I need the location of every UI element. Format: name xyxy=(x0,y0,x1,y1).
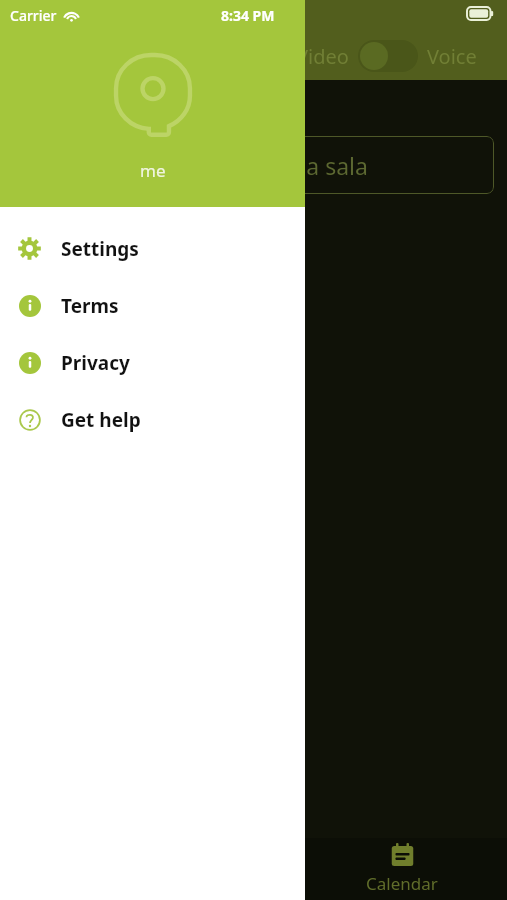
staticText: me xyxy=(140,159,166,182)
staticText: Privacy xyxy=(61,350,130,376)
staticText: Voice xyxy=(427,43,477,70)
staticText: Settings xyxy=(61,236,139,262)
staticText: Carrier xyxy=(10,6,57,25)
staticText: Video xyxy=(296,43,349,70)
button[interactable]: da sua sala xyxy=(240,136,494,194)
staticText: Calendar xyxy=(366,872,438,895)
button[interactable]: Get help xyxy=(0,391,305,448)
staticText: Terms xyxy=(61,293,119,319)
staticText: 8:34 PM xyxy=(221,6,275,25)
staticText: Get help xyxy=(61,407,141,433)
button[interactable]: Toggle video or voice xyxy=(358,40,418,72)
button[interactable]: Terms xyxy=(0,277,305,334)
button[interactable]: Calendar xyxy=(335,838,469,900)
button[interactable]: Privacy xyxy=(0,334,305,391)
button[interactable]: Settings xyxy=(0,220,305,277)
staticText: da sua sala xyxy=(248,150,368,181)
